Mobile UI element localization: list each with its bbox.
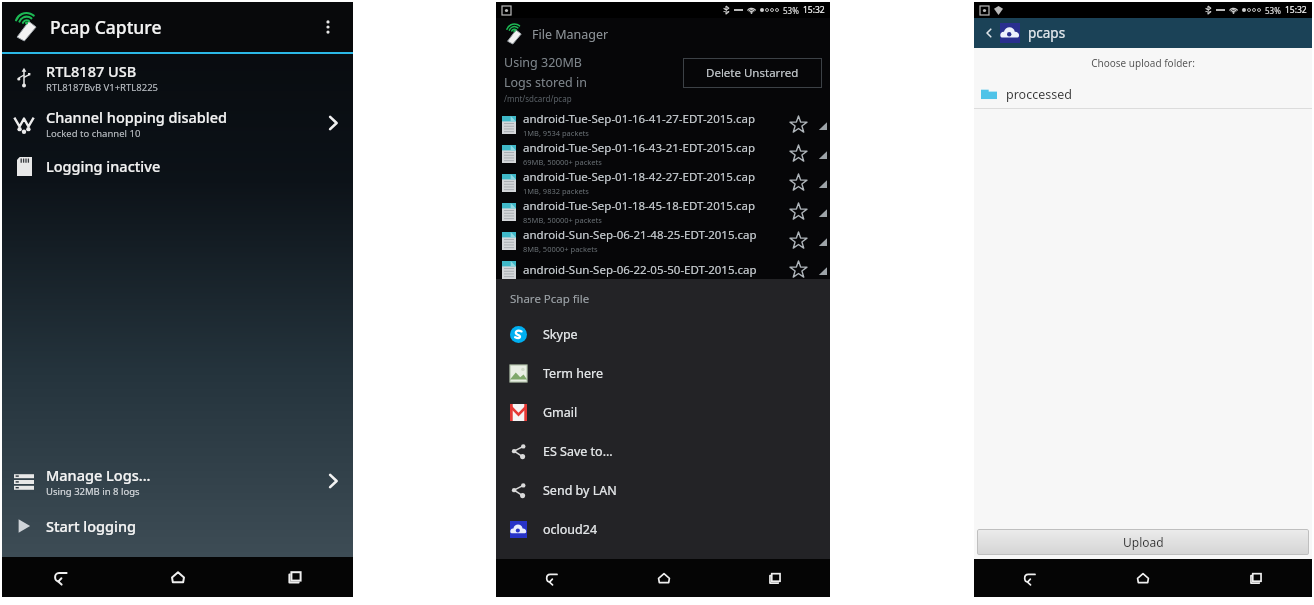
staticText: Choose upload folder:	[974, 56, 1312, 70]
button[interactable]: android-Sun-Sep-06-22-05-50-EDT-2015.cap	[502, 255, 830, 284]
staticText: Locked to channel 10	[46, 127, 141, 140]
button[interactable]: Skype	[510, 315, 830, 354]
staticText: 1MB, 9534 packets	[523, 128, 589, 138]
staticText: 53%	[783, 5, 799, 16]
button[interactable]: Gmail	[510, 393, 830, 432]
staticText: Channel hopping disabled	[46, 107, 227, 127]
button[interactable]: Send by LAN	[510, 471, 830, 510]
staticText: 69MB, 50000+ packets	[523, 157, 602, 167]
button[interactable]: Recent apps	[719, 559, 830, 597]
staticText: Gmail	[543, 404, 578, 421]
staticText: 8MB, 50000+ packets	[523, 244, 598, 254]
button[interactable]: android-Tue-Sep-01-16-43-21-EDT-2015.cap	[502, 139, 830, 168]
staticText: pcaps	[1028, 24, 1066, 42]
staticText: android-Tue-Sep-01-16-41-27-EDT-2015.cap	[523, 111, 756, 127]
staticText: Send by LAN	[543, 482, 617, 499]
button[interactable]: Back	[2, 557, 119, 597]
staticText: 1MB, 9832 packets	[523, 186, 589, 196]
button[interactable]: Home	[1086, 559, 1199, 597]
button[interactable]: proccessed	[981, 80, 1312, 108]
staticText: android-Tue-Sep-01-18-42-27-EDT-2015.cap	[523, 169, 756, 185]
staticText: Delete Unstarred	[706, 65, 799, 81]
staticText: android-Tue-Sep-01-16-43-21-EDT-2015.cap	[523, 140, 756, 156]
button[interactable]: Term here	[510, 354, 830, 393]
button[interactable]: android-Sun-Sep-06-21-48-25-EDT-2015.cap	[502, 226, 830, 255]
staticText: Logging inactive	[46, 156, 161, 176]
staticText: Upload	[1123, 534, 1164, 550]
button[interactable]: Home	[119, 557, 236, 597]
button[interactable]: android-Tue-Sep-01-18-42-27-EDT-2015.cap	[502, 168, 830, 197]
staticText: 53%	[1265, 5, 1281, 16]
staticText: Logs stored in	[504, 74, 587, 91]
staticText: Share Pcap file	[510, 291, 590, 307]
button[interactable]: Recent apps	[1199, 559, 1312, 597]
button[interactable]: Home	[608, 559, 719, 597]
button[interactable]: Start logging	[2, 505, 353, 547]
staticText: android-Sun-Sep-06-22-05-50-EDT-2015.cap	[523, 262, 757, 278]
button[interactable]: More options	[313, 12, 343, 42]
staticText: Manage Logs...	[46, 465, 151, 485]
button[interactable]: Manage Logs...	[2, 457, 353, 505]
staticText: Using 32MB in 8 logs	[46, 485, 140, 498]
staticText: /mnt/sdcard/pcap	[504, 93, 572, 104]
staticText: android-Tue-Sep-01-18-45-18-EDT-2015.cap	[523, 198, 756, 214]
staticText: RTL8187 USB	[46, 61, 137, 81]
staticText: proccessed	[1006, 86, 1072, 103]
staticText: RTL8187BvB V1+RTL8225	[46, 81, 159, 94]
button[interactable]: RTL8187 USB	[2, 54, 353, 100]
button[interactable]: Back	[496, 559, 608, 597]
button[interactable]: ocloud24	[510, 510, 830, 549]
staticText: 85MB, 50000+ packets	[523, 215, 602, 225]
button[interactable]: android-Tue-Sep-01-16-41-27-EDT-2015.cap	[502, 110, 830, 139]
button[interactable]: ES Save to...	[510, 432, 830, 471]
staticText: android-Sun-Sep-06-21-48-25-EDT-2015.cap	[523, 227, 757, 243]
button[interactable]: android-Tue-Sep-01-18-45-18-EDT-2015.cap	[502, 197, 830, 226]
staticText: ocloud24	[543, 521, 598, 538]
staticText: Skype	[543, 326, 578, 343]
staticText: Start logging	[46, 516, 137, 536]
staticText: 15:32	[803, 4, 825, 16]
button[interactable]: Logging inactive	[2, 146, 353, 186]
button[interactable]: Back	[974, 559, 1086, 597]
staticText: File Manager	[532, 26, 609, 43]
staticText: Pcap Capture	[50, 15, 162, 39]
button[interactable]: Channel hopping disabled	[2, 100, 353, 146]
staticText: 15:32	[1285, 4, 1307, 16]
staticText: ES Save to...	[543, 443, 613, 460]
button[interactable]: Upload	[977, 529, 1309, 555]
button[interactable]: Up	[980, 24, 998, 42]
button[interactable]: Recent apps	[236, 557, 353, 597]
staticText: Using 320MB	[504, 54, 582, 71]
staticText: Term here	[543, 365, 603, 382]
button[interactable]: Delete Unstarred	[683, 58, 822, 88]
